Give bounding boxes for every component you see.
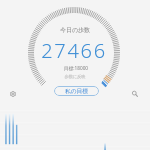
- staticText: 目標:18000: [1, 65, 150, 71]
- staticText: 歩数に反映: [0, 74, 150, 79]
- staticText: 私の目標: [65, 88, 88, 95]
- button[interactable]: 私の目標: [54, 86, 99, 96]
- button[interactable]: Search: [127, 86, 143, 102]
- button[interactable]: Settings: [5, 86, 21, 102]
- staticText: 今日の歩数: [0, 26, 150, 34]
- staticText: 27466: [0, 37, 149, 64]
